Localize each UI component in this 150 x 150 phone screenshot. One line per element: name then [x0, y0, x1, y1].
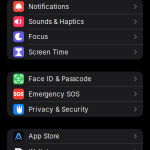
button[interactable]: App Store: [7, 129, 143, 143]
staticText: SOS: [14, 90, 24, 98]
button[interactable]: Screen Time: [7, 44, 143, 60]
staticText: App Store: [28, 132, 59, 140]
staticText: Sounds & Haptics: [28, 18, 83, 25]
staticText: Notifications: [28, 2, 68, 10]
button[interactable]: Privacy & Security: [7, 102, 143, 117]
staticText: Privacy & Security: [28, 105, 88, 113]
staticText: Screen Time: [28, 48, 68, 56]
button[interactable]: Sounds & Haptics: [7, 14, 143, 29]
staticText: Focus: [28, 33, 47, 41]
button[interactable]: Notifications: [7, 0, 143, 14]
button[interactable]: Wallet: [7, 144, 143, 150]
button[interactable]: Focus: [7, 29, 143, 44]
button[interactable]: SOS: [7, 87, 143, 101]
staticText: Emergency SOS: [28, 90, 79, 98]
button[interactable]: Face ID & Passcode: [7, 72, 143, 86]
staticText: Face ID & Passcode: [28, 75, 91, 83]
staticText: Wallet: [28, 148, 48, 150]
